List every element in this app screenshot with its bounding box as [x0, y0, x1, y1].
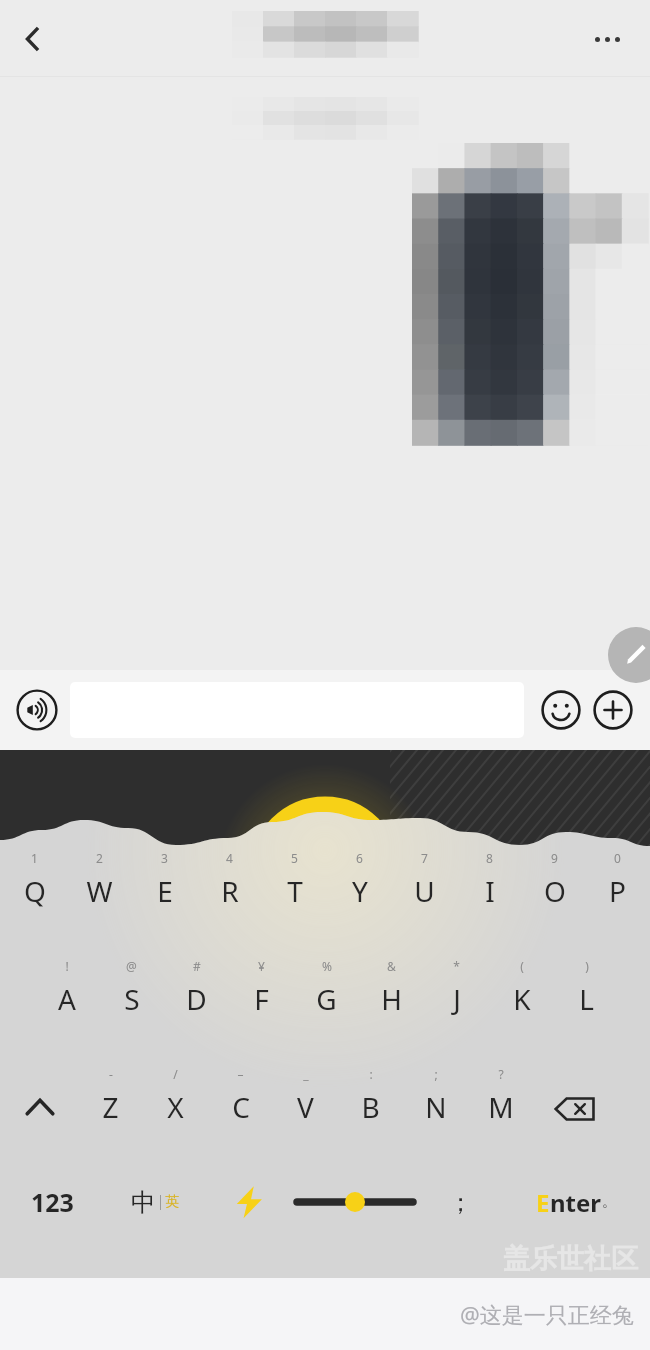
staticText: J — [453, 980, 461, 1018]
staticText: W — [86, 872, 113, 910]
button[interactable]: - — [78, 1066, 143, 1138]
staticText: E — [536, 1186, 550, 1219]
button[interactable]: @ — [99, 958, 164, 1030]
button[interactable]: Quick input — [206, 1164, 292, 1240]
staticText: 6 — [356, 850, 363, 866]
staticText: ; — [434, 1066, 438, 1082]
staticText: P — [609, 872, 626, 910]
button[interactable]: ¥ — [229, 958, 294, 1030]
button[interactable]: 4 — [197, 850, 262, 922]
staticText: 3 — [161, 850, 168, 866]
button[interactable]: E — [502, 1164, 650, 1240]
staticText: N — [425, 1088, 447, 1126]
button[interactable]: ; — [403, 1066, 468, 1138]
staticText: – — [237, 1066, 244, 1082]
staticText: _ — [303, 1066, 309, 1082]
staticText: ¥ — [258, 958, 265, 974]
staticText: @ — [126, 958, 137, 974]
button[interactable]: Space — [292, 1164, 418, 1240]
staticText: Z — [102, 1088, 119, 1126]
staticText: - — [109, 1066, 113, 1082]
staticText: Y — [352, 872, 368, 910]
button[interactable]: Photo — [412, 143, 648, 445]
button[interactable]: Compose — [608, 627, 650, 683]
staticText: 英 — [165, 1193, 179, 1211]
staticText: ； — [448, 1187, 473, 1218]
button[interactable]: ! — [34, 958, 99, 1030]
button[interactable]: 1 — [2, 850, 67, 922]
staticText: 0 — [614, 850, 621, 866]
button[interactable]: _ — [273, 1066, 338, 1138]
button[interactable]: Shift — [2, 1066, 78, 1134]
staticText: 1 — [31, 850, 38, 866]
staticText: 2 — [96, 850, 103, 866]
staticText: @这是一只正经兔 — [460, 1299, 634, 1329]
staticText: E — [157, 872, 173, 910]
button[interactable]: % — [294, 958, 359, 1030]
staticText: Q — [24, 872, 46, 910]
staticText: K — [513, 980, 531, 1018]
button[interactable]: Emoji — [536, 685, 586, 735]
staticText: 7 — [421, 850, 428, 866]
staticText: C — [232, 1088, 250, 1126]
staticText: 中 — [131, 1187, 156, 1218]
staticText: ) — [585, 958, 589, 974]
staticText: A — [58, 980, 76, 1018]
button[interactable]: 7 — [392, 850, 457, 922]
staticText: : — [369, 1066, 373, 1082]
staticText: D — [186, 980, 207, 1018]
staticText: V — [297, 1088, 314, 1126]
staticText: * — [453, 958, 460, 974]
staticText: # — [193, 958, 201, 974]
staticText: 盖乐世社区 — [503, 1242, 638, 1276]
staticText: M — [488, 1088, 514, 1126]
staticText: ! — [65, 958, 69, 974]
staticText: 5 — [291, 850, 298, 866]
staticText: 。 — [602, 1193, 616, 1211]
staticText: 9 — [551, 850, 558, 866]
button[interactable]: ) — [554, 958, 619, 1030]
button[interactable]: More options — [580, 12, 634, 66]
staticText: G — [316, 980, 337, 1018]
button[interactable]: Backspace — [539, 1066, 611, 1134]
staticText: % — [322, 958, 332, 974]
staticText: & — [387, 958, 396, 974]
staticText: I — [485, 872, 495, 910]
staticText: 8 — [486, 850, 493, 866]
button[interactable]: & — [359, 958, 424, 1030]
staticText: nter — [550, 1186, 602, 1219]
button[interactable]: – — [208, 1066, 273, 1138]
staticText: 123 — [31, 1185, 74, 1219]
staticText: T — [287, 872, 303, 910]
button[interactable]: 0 — [587, 850, 648, 922]
staticText: F — [254, 980, 269, 1018]
button[interactable]: Back — [6, 12, 60, 66]
staticText: / — [173, 1066, 178, 1082]
button[interactable]: 3 — [132, 850, 197, 922]
staticText: ( — [520, 958, 524, 974]
button[interactable]: ? — [468, 1066, 533, 1138]
button[interactable]: 中 — [104, 1164, 206, 1240]
button[interactable]: ； — [418, 1164, 502, 1240]
button[interactable]: * — [424, 958, 489, 1030]
button[interactable]: 5 — [262, 850, 327, 922]
button[interactable]: Voice message — [12, 685, 62, 735]
button[interactable]: : — [338, 1066, 403, 1138]
button[interactable]: ( — [489, 958, 554, 1030]
button[interactable]: # — [164, 958, 229, 1030]
button[interactable]: 2 — [67, 850, 132, 922]
staticText: ? — [498, 1066, 504, 1082]
button[interactable]: 6 — [327, 850, 392, 922]
staticText: B — [361, 1088, 380, 1126]
button[interactable]: 8 — [457, 850, 522, 922]
staticText: S — [124, 980, 140, 1018]
staticText: L — [579, 980, 594, 1018]
button[interactable]: 9 — [522, 850, 587, 922]
button[interactable]: More — [588, 685, 638, 735]
staticText: 4 — [226, 850, 233, 866]
staticText: U — [414, 872, 435, 910]
button[interactable]: / — [143, 1066, 208, 1138]
staticText: X — [167, 1088, 184, 1126]
button[interactable]: 123 — [0, 1164, 104, 1240]
